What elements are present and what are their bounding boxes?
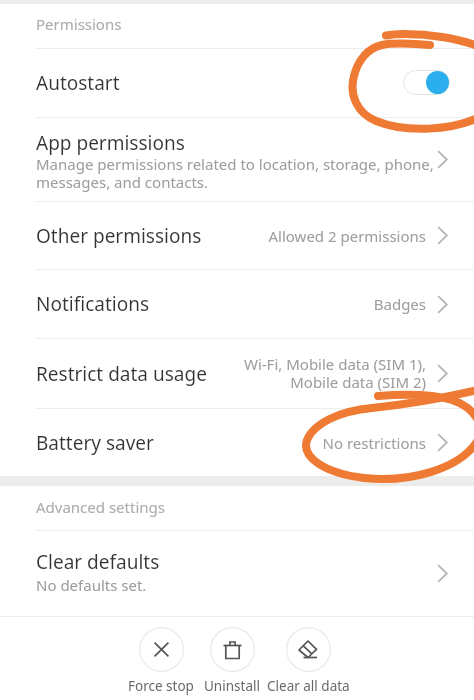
button[interactable]: Clear all data [260, 627, 356, 695]
other: Autostart toggle [403, 67, 450, 98]
staticText: Allowed 2 permissions [268, 226, 426, 246]
staticText: Uninstall [204, 677, 260, 695]
staticText: Battery saver [36, 430, 154, 456]
staticText: Wi-Fi, Mobile data (SIM 1), Mobile data … [236, 354, 426, 393]
staticText: Advanced settings [36, 497, 165, 517]
staticText: Restrict data usage [36, 361, 207, 387]
staticText: Badges [373, 294, 426, 314]
staticText: Clear defaults [36, 549, 160, 575]
button[interactable]: Restrict data usage [0, 339, 474, 408]
staticText: Manage permissions related to location, … [36, 154, 437, 193]
button[interactable]: Clear defaults [0, 531, 474, 616]
button[interactable]: Uninstall [184, 627, 280, 695]
button[interactable]: Autostart [0, 48, 474, 117]
staticText: Clear all data [267, 677, 350, 695]
button[interactable]: Notifications [0, 270, 474, 338]
staticText: No defaults set. [36, 575, 147, 595]
staticText: App permissions [36, 130, 185, 156]
staticText: Notifications [36, 291, 150, 317]
button[interactable]: Other permissions [0, 202, 474, 269]
button[interactable]: Force stop [113, 627, 209, 695]
staticText: Other permissions [36, 223, 202, 249]
button[interactable]: App permissions [0, 118, 474, 201]
staticText: Autostart [36, 70, 403, 96]
staticText: Force stop [128, 677, 194, 695]
staticText: Permissions [36, 14, 122, 34]
button[interactable]: Battery saver [0, 409, 474, 476]
staticText: No restrictions [322, 433, 426, 453]
